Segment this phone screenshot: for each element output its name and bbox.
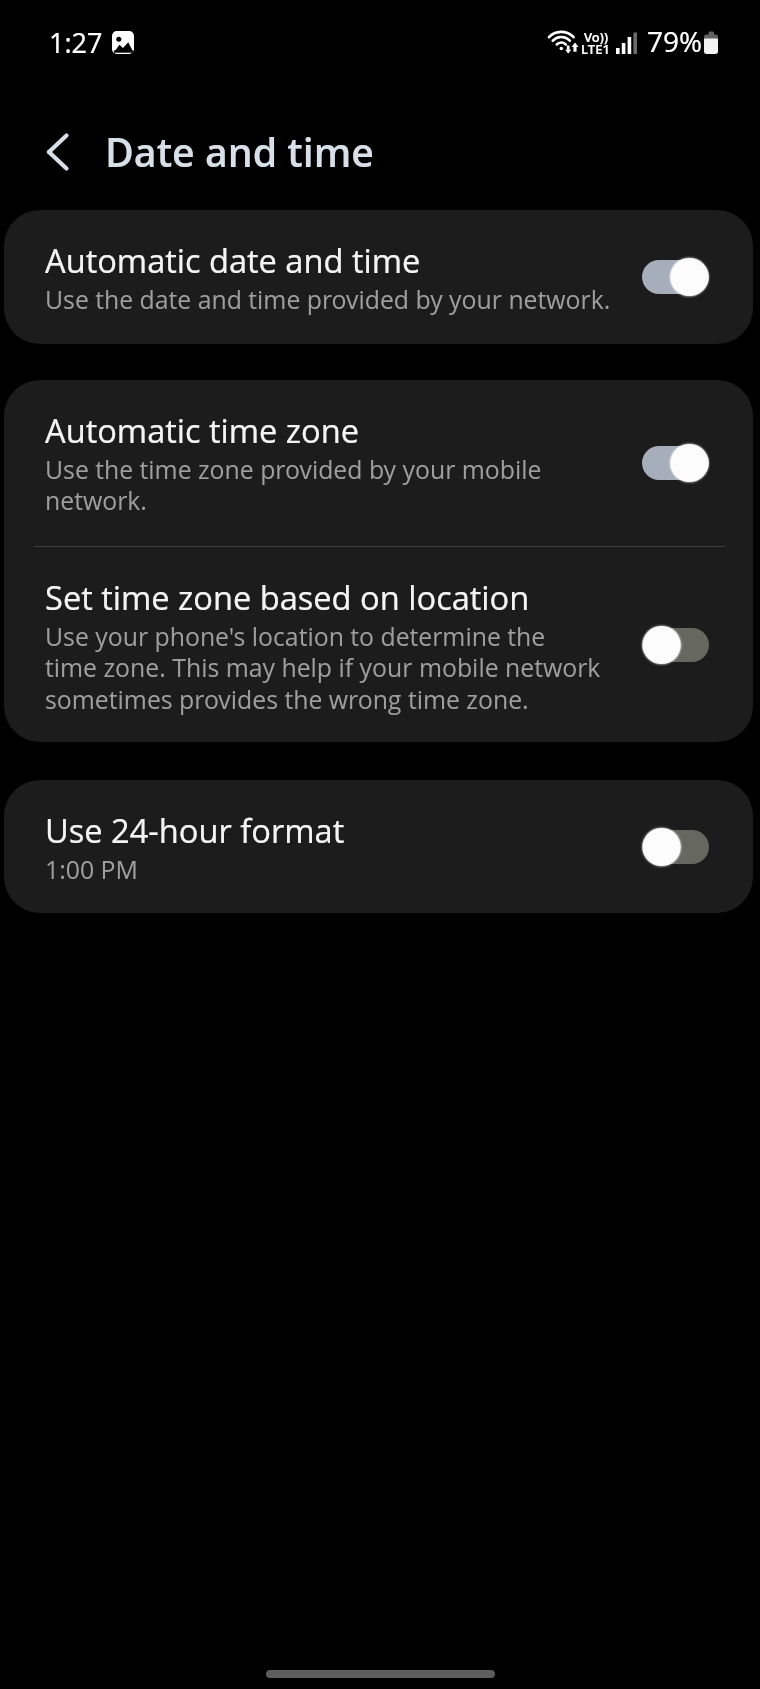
- staticText: Automatic date and time: [45, 238, 421, 282]
- staticText: Vo)): [584, 28, 609, 46]
- button[interactable]: Set time zone based on location, switch …: [642, 624, 709, 666]
- button[interactable]: Automatic date and time, switch on: [642, 256, 709, 298]
- button[interactable]: Set time zone based on location: [4, 547, 753, 742]
- button[interactable]: Automatic time zone, switch on: [642, 442, 709, 484]
- button[interactable]: Use 24-hour format: [4, 780, 753, 913]
- staticText: 1:00 PM: [45, 852, 138, 886]
- staticText: 1:27: [49, 24, 103, 61]
- staticText: Automatic time zone: [45, 408, 360, 452]
- staticText: Use 24-hour format: [45, 808, 345, 852]
- staticText: Set time zone based on location: [45, 575, 530, 619]
- staticText: Use your phone's location to determine t…: [45, 619, 601, 716]
- staticText: 79%: [647, 22, 703, 60]
- button[interactable]: Use 24-hour format, switch off: [642, 826, 709, 868]
- staticText: Use the time zone provided by your mobil…: [45, 452, 542, 517]
- staticText: Use the date and time provided by your n…: [45, 282, 611, 316]
- button[interactable]: Automatic time zone: [4, 380, 753, 546]
- button[interactable]: Back: [28, 124, 84, 180]
- staticText: Date and time: [105, 125, 374, 179]
- button[interactable]: Automatic date and time: [4, 210, 753, 344]
- staticText: LTE1: [581, 40, 610, 58]
